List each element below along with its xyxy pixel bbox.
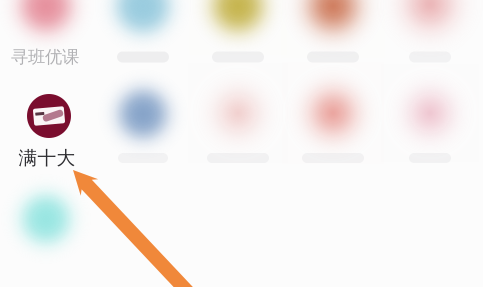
staticText: 满十大 <box>18 146 75 169</box>
staticText: 寻班优课 <box>11 46 79 68</box>
